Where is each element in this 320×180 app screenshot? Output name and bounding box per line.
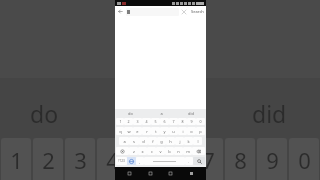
button[interactable]: Screenshot — [186, 168, 197, 179]
button[interactable]: k — [184, 137, 193, 145]
staticText: 0 — [298, 145, 311, 175]
staticText: s — [133, 139, 135, 144]
button[interactable]: q — [116, 127, 124, 135]
staticText: , — [139, 159, 141, 164]
staticText: Search — [191, 9, 204, 14]
button[interactable]: y — [160, 127, 169, 135]
staticText: . — [188, 159, 190, 164]
button[interactable]: Back — [115, 6, 126, 17]
staticText: 5 — [154, 119, 157, 124]
button[interactable]: Search — [193, 157, 205, 165]
staticText: 3 — [136, 119, 139, 124]
button[interactable]: e — [133, 127, 142, 135]
staticText: did — [188, 111, 194, 116]
staticText: m — [186, 149, 190, 154]
staticText: o — [190, 129, 193, 134]
button[interactable]: o — [187, 127, 196, 135]
staticText: 5 — [138, 145, 151, 175]
staticText: do — [128, 111, 133, 116]
staticText: 1 — [119, 119, 122, 124]
staticText: 6 — [163, 119, 166, 124]
staticText: v — [159, 149, 162, 154]
staticText: c — [151, 149, 153, 154]
button[interactable]: 2 — [124, 118, 133, 125]
button[interactable]: a — [146, 109, 176, 117]
staticText: 3 — [74, 145, 87, 175]
button[interactable]: d — [139, 137, 148, 145]
button[interactable]: h — [166, 137, 175, 145]
button[interactable]: s — [129, 137, 139, 145]
button[interactable]: i — [178, 127, 187, 135]
button[interactable]: t — [151, 127, 160, 135]
button[interactable]: , — [136, 157, 144, 165]
button[interactable]: f — [148, 137, 157, 145]
staticText: 8 — [234, 145, 247, 175]
button[interactable]: j — [175, 137, 184, 145]
button[interactable]: Change keyboard — [127, 157, 136, 165]
staticText: j — [179, 139, 181, 144]
button[interactable]: 0 — [196, 118, 205, 125]
button[interactable]: ?123 — [116, 157, 127, 165]
button[interactable]: Backspace — [192, 147, 205, 155]
staticText: f — [152, 139, 154, 144]
button[interactable]: v — [156, 147, 165, 155]
button[interactable]: c — [147, 147, 156, 155]
staticText: 2 — [42, 145, 55, 175]
button[interactable]: 5 — [151, 118, 160, 125]
button[interactable]: Shift — [116, 147, 129, 155]
button[interactable]: 8 — [178, 118, 187, 125]
button[interactable]: l — [193, 137, 202, 145]
staticText: 9 — [266, 145, 279, 175]
staticText: y — [163, 129, 166, 134]
button[interactable] — [126, 8, 179, 16]
button[interactable]: r — [142, 127, 151, 135]
button[interactable]: z — [129, 147, 138, 155]
button[interactable]: x — [138, 147, 147, 155]
staticText: did — [252, 98, 287, 129]
button[interactable]: Space — [144, 157, 185, 165]
staticText: i — [182, 129, 184, 134]
button[interactable]: 9 — [187, 118, 196, 125]
button[interactable]: b — [165, 147, 174, 155]
staticText: d — [142, 139, 145, 144]
staticText: n — [177, 149, 180, 154]
staticText: z — [133, 149, 135, 154]
staticText: ?123 — [118, 159, 125, 163]
button[interactable]: p — [196, 127, 205, 135]
staticText: a — [123, 139, 126, 144]
staticText: 9 — [190, 119, 193, 124]
button[interactable]: u — [169, 127, 178, 135]
staticText: 4 — [106, 145, 119, 175]
button[interactable]: 7 — [169, 118, 178, 125]
button[interactable]: 4 — [142, 118, 151, 125]
button[interactable]: Home — [145, 168, 156, 179]
staticText: 7 — [202, 145, 215, 175]
button[interactable]: 6 — [160, 118, 169, 125]
button[interactable]: Back — [124, 168, 135, 179]
button[interactable]: do — [115, 109, 146, 117]
staticText: 4 — [145, 119, 148, 124]
button[interactable]: . — [185, 157, 193, 165]
button[interactable]: w — [124, 127, 133, 135]
staticText: l — [197, 139, 199, 144]
staticText: b — [168, 149, 171, 154]
button[interactable]: Recents — [165, 168, 176, 179]
button[interactable]: 1 — [116, 118, 124, 125]
staticText: a — [160, 111, 163, 116]
staticText: w — [127, 129, 131, 134]
button[interactable]: m — [183, 147, 192, 155]
staticText: 8 — [181, 119, 184, 124]
staticText: 7 — [172, 119, 175, 124]
staticText: h — [169, 139, 172, 144]
button[interactable]: Search — [189, 9, 206, 14]
button[interactable]: g — [157, 137, 166, 145]
staticText: x — [141, 149, 144, 154]
staticText: k — [187, 139, 190, 144]
staticText: 0 — [199, 119, 202, 124]
button[interactable]: Clear — [179, 7, 189, 17]
button[interactable]: 3 — [133, 118, 142, 125]
button[interactable]: did — [176, 109, 206, 117]
staticText: 6 — [170, 145, 183, 175]
button[interactable]: a — [119, 137, 129, 145]
button[interactable]: n — [174, 147, 183, 155]
